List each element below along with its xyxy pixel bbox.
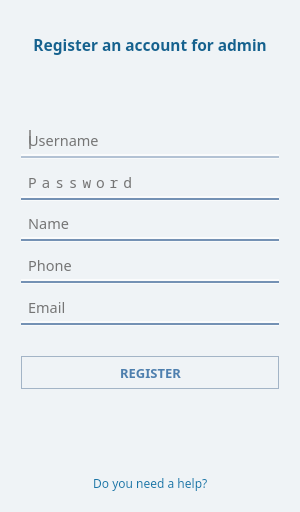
button[interactable]: Username	[21, 121, 279, 159]
staticText: Do you need a help?	[93, 475, 208, 491]
staticText: Phone	[28, 255, 72, 275]
staticText: Username	[28, 130, 99, 150]
staticText: Email	[28, 297, 66, 317]
button[interactable]: Name	[21, 204, 279, 242]
staticText: Register an account for admin	[0, 34, 300, 55]
button[interactable]: REGISTER	[21, 356, 279, 389]
button[interactable]: Email	[21, 288, 279, 326]
staticText: Password	[28, 172, 137, 192]
staticText: Name	[28, 213, 69, 233]
button[interactable]: Do you need a help?	[87, 472, 214, 494]
button[interactable]: Phone	[21, 246, 279, 284]
staticText: REGISTER	[120, 364, 181, 382]
button[interactable]: Password	[21, 163, 279, 201]
